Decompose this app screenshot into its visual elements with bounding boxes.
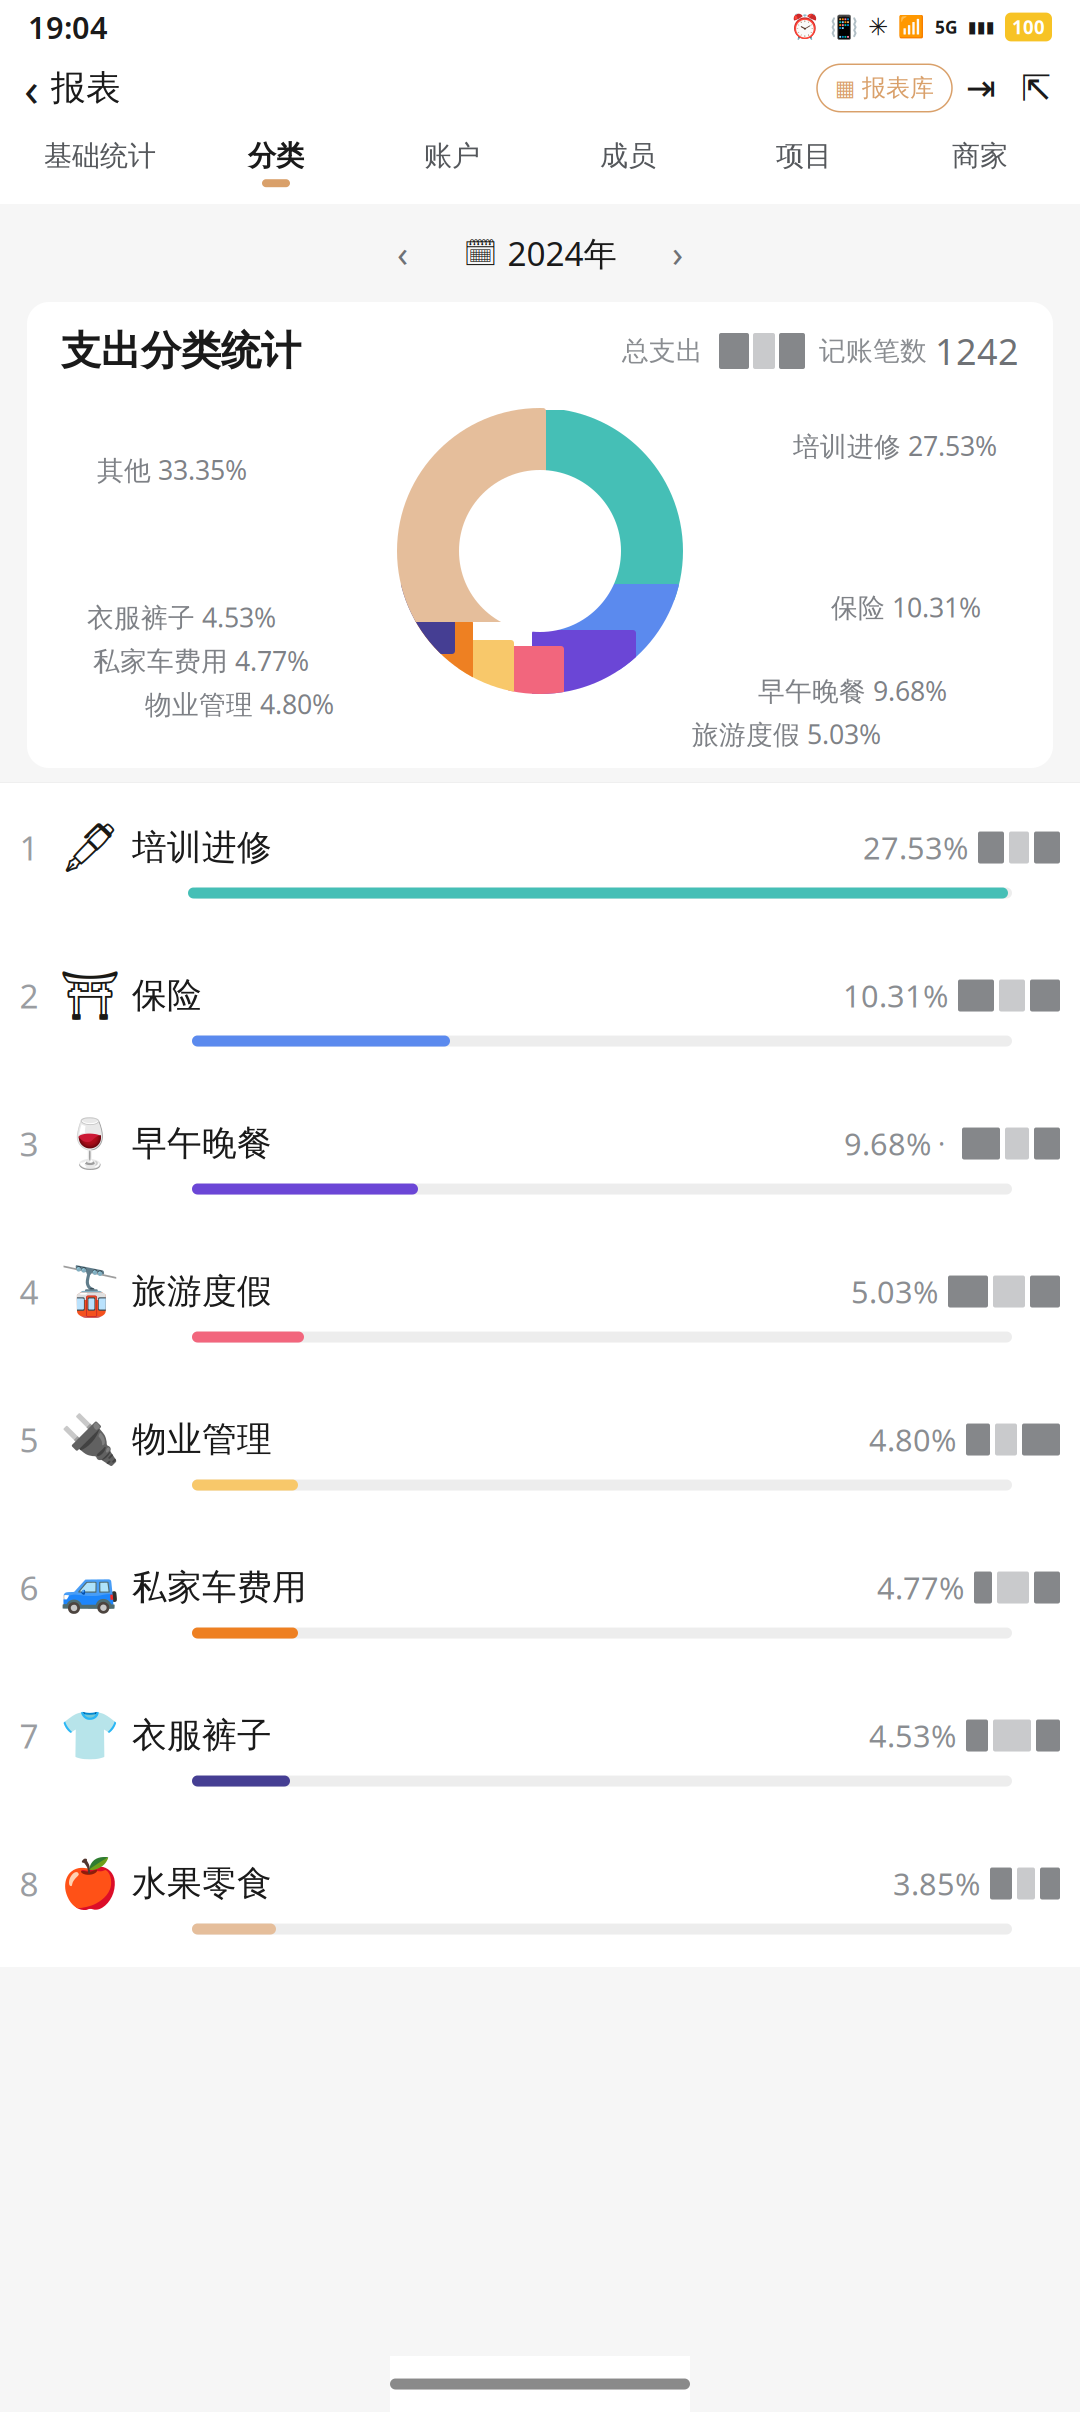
staticText: 3.85% [893,1863,980,1904]
staticText: ▮▮▮ [968,18,995,36]
staticText: 保险 [132,974,202,1017]
staticText: 衣服裤子 4.53% [87,599,276,635]
button[interactable]: 上一年 [371,225,433,281]
staticText: ⇱ [1021,68,1051,108]
button[interactable]: 下一年 [646,225,708,281]
staticText: 衣服裤子 [132,1714,272,1757]
staticText: 🚡 [60,1264,120,1319]
staticText: 培训进修 [132,826,272,869]
button[interactable]: 成员 [540,130,716,196]
staticText: 报表库 [862,73,934,103]
button[interactable]: ‹ [24,48,121,128]
staticText: 旅游度假 5.03% [692,716,881,752]
button[interactable]: 基础统计 [12,130,188,196]
staticText: 物业管理 [132,1418,272,1461]
staticText: 🍷 [60,1116,120,1171]
staticText: 旅游度假 [132,1270,272,1313]
staticText: 5.03% [851,1271,938,1312]
button[interactable]: 项目 [716,130,892,196]
button[interactable]: 分类 [188,130,364,196]
staticText: 商家 [952,139,1008,173]
staticText: 物业管理 4.80% [145,686,334,722]
staticText: › [672,229,683,277]
staticText: 🔌 [60,1412,120,1467]
staticText: 保险 10.31% [831,589,981,625]
staticText: ‹ [24,56,39,120]
staticText: ⛩ [59,968,120,1023]
staticText: 分类 [248,139,304,173]
button[interactable]: ▦ [817,64,952,112]
staticText: 成员 [600,139,656,173]
staticText: 📳 [830,14,858,40]
staticText: 其他 33.35% [97,452,247,487]
button[interactable]: 账户 [364,130,540,196]
button[interactable]: 2 [0,931,1080,1079]
staticText: 4.53% [869,1715,956,1756]
staticText: 支出分类统计 [61,326,301,375]
staticText: 🖋 [59,820,120,875]
staticText: 3 [19,1121,38,1166]
staticText: 培训进修 27.53% [793,428,997,463]
staticText: · [931,1126,952,1161]
staticText: 100 [1012,15,1045,39]
staticText: 👕 [60,1708,120,1763]
button[interactable]: 1 [0,783,1080,931]
staticText: 🍎 [60,1856,120,1911]
staticText: 🗓 [463,238,497,268]
staticText: 7 [19,1713,38,1758]
staticText: 早午晚餐 9.68% [758,673,947,708]
staticText: 1 [19,825,38,870]
button[interactable]: 4 [0,1227,1080,1375]
staticText: ⏰ [790,13,820,41]
button[interactable]: 6 [0,1523,1080,1671]
staticText: 6 [19,1565,38,1610]
staticText: 1242 [935,327,1019,375]
button[interactable]: 8 [0,1819,1080,1967]
staticText: 报表 [51,67,121,109]
staticText: 项目 [776,139,832,173]
staticText: 私家车费用 4.77% [93,643,309,678]
staticText: 4.77% [877,1567,964,1608]
staticText: 4.80% [869,1419,956,1460]
staticText: ▦ [835,76,855,100]
staticText: 8 [19,1861,38,1906]
staticText: 🚙 [60,1560,120,1615]
staticText: 5G [935,15,958,38]
staticText: 📶 [898,15,925,39]
staticText: 5 [19,1417,38,1462]
button[interactable]: 5 [0,1375,1080,1523]
staticText: 10.31% [843,975,948,1016]
button[interactable]: 3 [0,1079,1080,1227]
staticText: 27.53% [863,827,968,868]
button[interactable]: 🗓 [463,223,616,283]
staticText: 账户 [424,139,480,173]
staticText: 私家车费用 [132,1566,307,1609]
button[interactable]: 商家 [892,130,1068,196]
staticText: 4 [19,1269,38,1314]
staticText: 记账笔数 [819,335,927,367]
staticText: 19:04 [28,7,108,47]
button[interactable]: 分享 [1010,63,1062,113]
staticText: 早午晚餐 [132,1122,272,1165]
staticText: 水果零食 [132,1862,272,1905]
staticText: 9.68% [844,1123,931,1164]
button[interactable]: 导出报表 [952,63,1010,113]
staticText: 基础统计 [44,139,156,173]
button[interactable]: 7 [0,1671,1080,1819]
staticText: 总支出 [622,335,703,367]
staticText: 2024年 [507,231,616,275]
staticText: ⇥ [966,68,996,108]
staticText: ‹ [397,229,408,277]
staticText: 2 [19,973,38,1018]
staticText: ✳ [868,13,888,41]
